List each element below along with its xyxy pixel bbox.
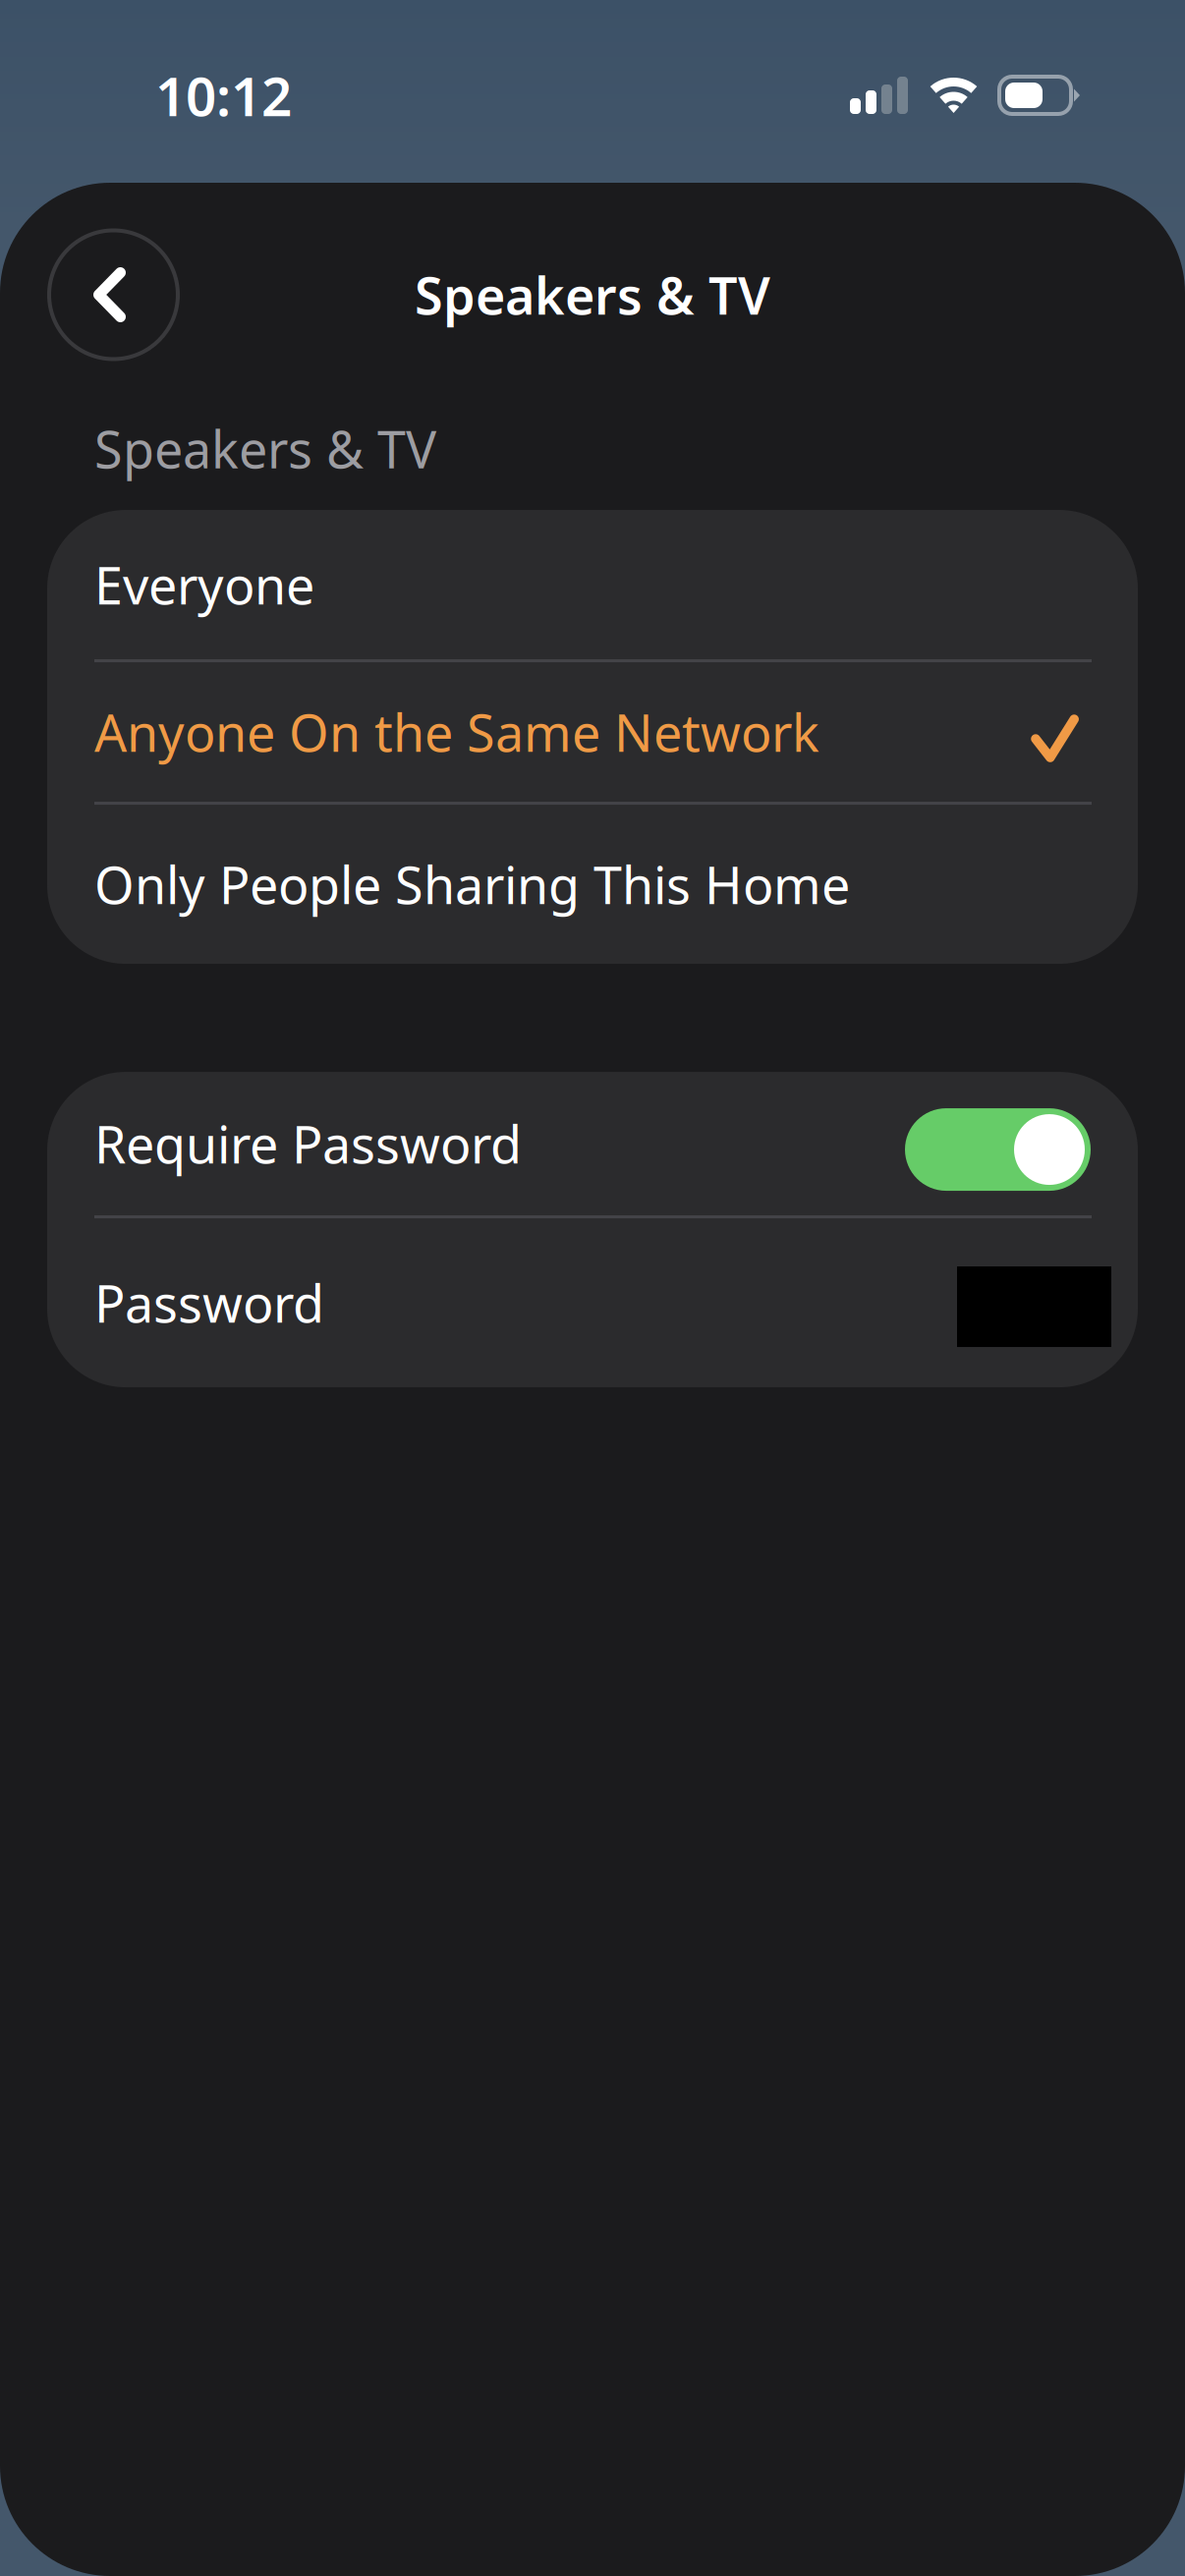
button[interactable]: Require Password xyxy=(47,1072,1138,1215)
button[interactable]: Anyone On the Same Network xyxy=(47,662,1138,802)
button[interactable]: Back xyxy=(49,230,178,359)
staticText: Password xyxy=(94,1269,324,1337)
button[interactable]: Only People Sharing This Home xyxy=(47,805,1138,964)
button[interactable]: Password xyxy=(47,1218,1138,1387)
staticText: Only People Sharing This Home xyxy=(94,850,850,918)
staticText: Anyone On the Same Network xyxy=(94,698,819,766)
staticText: Everyone xyxy=(94,551,314,619)
staticText: Speakers & TV xyxy=(94,415,436,482)
staticText: 10:12 xyxy=(155,60,292,131)
staticText: Speakers & TV xyxy=(415,261,770,329)
button[interactable]: Everyone xyxy=(47,510,1138,659)
staticText: Require Password xyxy=(94,1110,522,1178)
